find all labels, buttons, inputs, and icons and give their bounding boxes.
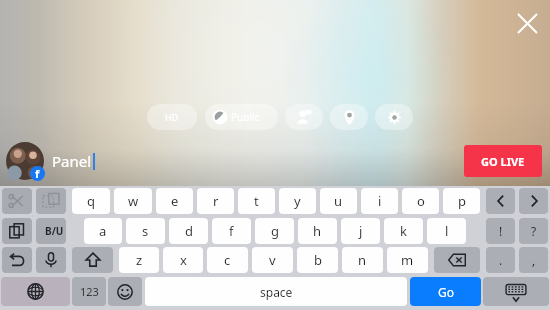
staticText: w: [128, 192, 139, 210]
staticText: !: [499, 223, 503, 239]
button[interactable]: x: [163, 247, 203, 273]
button[interactable]: h: [298, 218, 337, 244]
button[interactable]: j: [341, 218, 380, 244]
staticText: d: [185, 222, 193, 240]
staticText: t: [254, 192, 259, 210]
button[interactable]: p: [443, 188, 480, 214]
staticText: a: [99, 222, 107, 240]
button[interactable]: i: [361, 188, 398, 214]
staticText: x: [180, 251, 187, 269]
button[interactable]: w: [114, 188, 152, 214]
button[interactable]: Change keyboard: [1, 277, 70, 306]
staticText: l: [445, 222, 449, 240]
staticText: u: [334, 192, 343, 210]
button[interactable]: Backspace: [434, 247, 480, 273]
button[interactable]: u: [320, 188, 357, 214]
button[interactable]: k: [384, 218, 423, 244]
button[interactable]: Go: [410, 277, 481, 306]
staticText: h: [313, 222, 322, 240]
staticText: n: [358, 251, 367, 269]
button[interactable]: e: [156, 188, 193, 214]
button[interactable]: Format: [36, 218, 66, 244]
staticText: f: [229, 222, 234, 240]
button[interactable]: Cut: [2, 188, 32, 214]
button[interactable]: Settings: [375, 104, 413, 130]
button[interactable]: space: [145, 277, 407, 306]
staticText: v: [269, 251, 276, 269]
staticText: o: [417, 192, 425, 210]
staticText: c: [224, 251, 231, 269]
staticText: .: [499, 252, 503, 268]
button[interactable]: q: [72, 188, 110, 214]
button[interactable]: m: [387, 247, 428, 273]
staticText: e: [171, 192, 179, 210]
staticText: space: [260, 284, 293, 300]
button[interactable]: Public: [205, 104, 278, 130]
button[interactable]: Paste: [2, 218, 32, 244]
button[interactable]: r: [197, 188, 234, 214]
button[interactable]: ,: [519, 247, 548, 273]
button[interactable]: Previous: [486, 188, 515, 214]
button[interactable]: f: [212, 218, 251, 244]
staticText: y: [294, 192, 301, 210]
button[interactable]: HD: [147, 104, 197, 130]
button[interactable]: !: [486, 218, 515, 244]
button[interactable]: z: [119, 247, 159, 273]
button[interactable]: GO LIVE: [464, 145, 542, 177]
button[interactable]: 123: [72, 277, 106, 306]
button[interactable]: v: [252, 247, 293, 273]
button[interactable]: Shift: [72, 247, 113, 273]
staticText: g: [271, 222, 279, 240]
button[interactable]: t: [238, 188, 275, 214]
staticText: GO LIVE: [481, 154, 525, 169]
staticText: Panel: [52, 151, 92, 171]
button[interactable]: Emoji: [108, 277, 142, 306]
staticText: r: [213, 192, 219, 210]
button[interactable]: y: [279, 188, 316, 214]
staticText: q: [87, 192, 95, 210]
button[interactable]: .: [486, 247, 515, 273]
button[interactable]: g: [255, 218, 294, 244]
staticText: Public: [231, 110, 260, 124]
staticText: i: [378, 192, 382, 210]
button[interactable]: Close: [506, 2, 548, 44]
staticText: s: [142, 222, 149, 240]
button[interactable]: Undo: [2, 247, 32, 273]
staticText: 123: [80, 284, 99, 299]
staticText: k: [400, 222, 407, 240]
staticText: m: [401, 251, 414, 269]
button[interactable]: b: [297, 247, 338, 273]
staticText: z: [136, 251, 143, 269]
button[interactable]: l: [427, 218, 466, 244]
staticText: B/U: [45, 224, 64, 238]
button[interactable]: ?: [519, 218, 548, 244]
staticText: p: [458, 192, 466, 210]
staticText: f: [35, 166, 40, 181]
button[interactable]: Copy: [36, 188, 66, 214]
staticText: ,: [532, 252, 536, 268]
button[interactable]: o: [402, 188, 439, 214]
button[interactable]: Next: [519, 188, 548, 214]
staticText: ?: [531, 223, 537, 239]
staticText: b: [314, 251, 322, 269]
button[interactable]: n: [342, 247, 383, 273]
button[interactable]: c: [207, 247, 248, 273]
staticText: Go: [438, 284, 454, 300]
button[interactable]: Hide keyboard: [483, 277, 549, 306]
button[interactable]: Tag friends: [285, 104, 323, 130]
button[interactable]: d: [169, 218, 208, 244]
button[interactable]: a: [84, 218, 122, 244]
button[interactable]: Voice input: [36, 247, 66, 273]
button[interactable]: Location: [330, 104, 368, 130]
staticText: HD: [165, 111, 179, 123]
staticText: j: [359, 222, 363, 240]
button[interactable]: s: [126, 218, 165, 244]
